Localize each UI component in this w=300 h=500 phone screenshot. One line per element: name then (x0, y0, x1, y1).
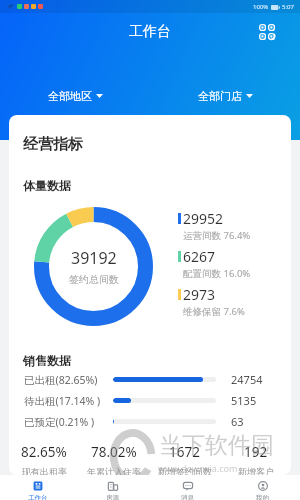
staticText: 新增签约间数 (158, 466, 212, 475)
staticText: 6267 (183, 247, 216, 266)
staticText: 新增客户 (238, 466, 274, 475)
button[interactable]: 扫一扫 (254, 19, 280, 45)
staticText: www.downxia.com (158, 462, 238, 474)
staticText: 消息 (181, 494, 194, 500)
button[interactable]: 1672 (149, 443, 220, 475)
button[interactable]: 工作台 (0, 475, 75, 500)
staticText: 82.65% (21, 443, 67, 461)
staticText: 销售数据 (23, 353, 71, 368)
staticText: 24754 (231, 372, 263, 387)
button[interactable]: 192 (220, 443, 291, 475)
staticText: 房源 (106, 494, 119, 500)
staticText: 工作台 (129, 23, 171, 41)
staticText: 当下软件园 (159, 431, 274, 460)
button[interactable]: 房源 (75, 475, 150, 500)
staticText: 100% (253, 3, 269, 11)
staticText: 5135 (231, 393, 257, 408)
staticText: 签约总间数 (69, 273, 119, 286)
staticText: 1672 (169, 443, 200, 461)
button[interactable]: 消息 (150, 475, 225, 500)
staticText: 现有出租率 (22, 466, 67, 475)
staticText: 工作台 (28, 494, 48, 500)
staticText: 63 (231, 414, 244, 429)
staticText: 年累计入住率 (87, 466, 141, 475)
staticText: 配置间数 16.0% (183, 267, 251, 280)
staticText: 2973 (183, 285, 216, 304)
staticText: 体量数据 (23, 178, 71, 193)
button[interactable]: 全部门店 (150, 81, 300, 111)
button[interactable]: 我的 (225, 475, 300, 500)
staticText: 29952 (183, 209, 224, 228)
staticText: 192 (244, 443, 268, 461)
staticText: 经营指标 (23, 135, 83, 154)
button[interactable]: 全部地区 (0, 81, 150, 111)
staticText: 已出租(82.65%) (24, 373, 113, 387)
staticText: 78.02% (91, 443, 137, 461)
staticText: 我的 (256, 494, 269, 500)
staticText: 已预定(0.21% ) (24, 415, 113, 429)
staticText: 5:07 (282, 3, 294, 11)
staticText: 维修保留 7.6% (183, 305, 245, 318)
staticText: 全部地区 (48, 89, 92, 103)
button[interactable]: 82.65% (9, 443, 79, 475)
staticText: 运营间数 76.4% (183, 229, 251, 242)
staticText: 待出租(17.14% ) (24, 394, 113, 408)
staticText: 39192 (71, 247, 117, 269)
button[interactable]: 78.02% (79, 443, 149, 475)
staticText: 全部门店 (198, 89, 242, 103)
